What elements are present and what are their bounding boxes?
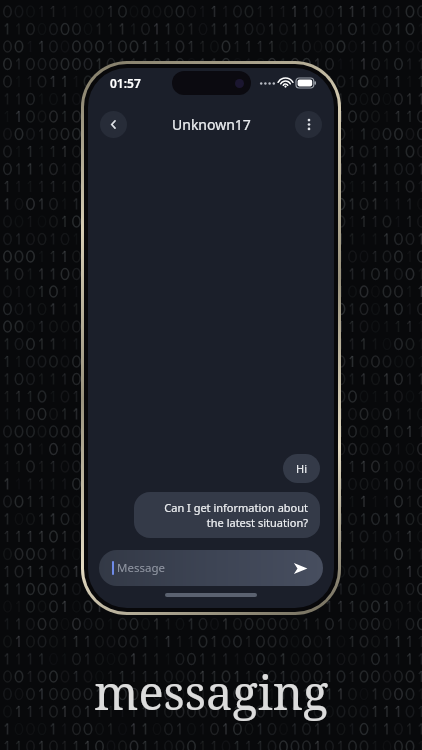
staticText: 01:57 bbox=[110, 75, 141, 91]
button[interactable]: Send bbox=[290, 558, 310, 578]
button[interactable]: Hi bbox=[283, 454, 320, 483]
button[interactable]: Can I get information about the latest s… bbox=[134, 492, 320, 538]
staticText: Hi bbox=[296, 461, 307, 476]
button[interactable]: Message bbox=[99, 550, 323, 586]
staticText: Message bbox=[117, 560, 165, 576]
staticText: Can I get information about the latest s… bbox=[146, 500, 308, 530]
staticText: messaging bbox=[94, 660, 329, 724]
button[interactable]: Back bbox=[100, 111, 127, 138]
staticText: Unknown17 bbox=[172, 115, 251, 134]
button[interactable]: More options bbox=[295, 111, 322, 138]
